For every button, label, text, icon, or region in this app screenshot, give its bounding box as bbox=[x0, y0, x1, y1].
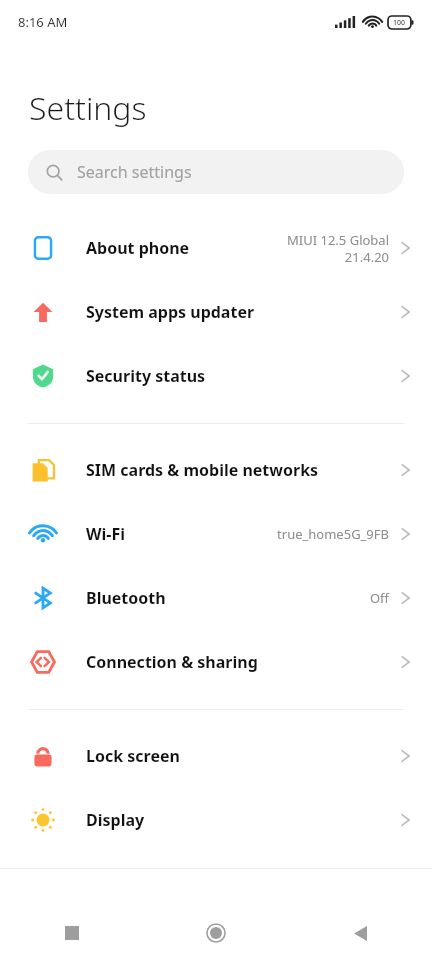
button[interactable]: Recents bbox=[0, 906, 144, 960]
button[interactable]: Home bbox=[144, 906, 288, 960]
button[interactable]: Bluetooth bbox=[0, 566, 432, 630]
staticText: System apps updater bbox=[86, 301, 255, 323]
button[interactable]: System apps updater bbox=[0, 280, 432, 344]
staticText: Off bbox=[369, 589, 389, 607]
button[interactable]: About phone bbox=[0, 216, 432, 280]
staticText: Lock screen bbox=[86, 745, 180, 767]
button[interactable]: Connection & sharing bbox=[0, 630, 432, 694]
staticText: SIM cards & mobile networks bbox=[86, 459, 319, 481]
staticText: Search settings bbox=[77, 161, 192, 183]
button[interactable]: SIM cards & mobile networks bbox=[0, 438, 432, 502]
button[interactable]: Back bbox=[288, 906, 432, 960]
button[interactable]: Display bbox=[0, 788, 432, 852]
button[interactable]: Search settings bbox=[28, 150, 404, 194]
button[interactable]: Lock screen bbox=[0, 724, 432, 788]
staticText: Settings bbox=[29, 86, 147, 130]
staticText: true_home5G_9FB bbox=[277, 525, 389, 543]
button[interactable]: Security status bbox=[0, 344, 432, 408]
staticText: Bluetooth bbox=[86, 587, 166, 609]
staticText: Security status bbox=[86, 365, 206, 387]
staticText: MIUI 12.5 Global 21.4.20 bbox=[287, 231, 389, 266]
button[interactable]: Wi-Fi bbox=[0, 502, 432, 566]
staticText: Display bbox=[86, 809, 145, 831]
staticText: Wi-Fi bbox=[86, 523, 125, 545]
staticText: 8:16 AM bbox=[18, 13, 68, 31]
staticText: Connection & sharing bbox=[86, 651, 258, 673]
staticText: About phone bbox=[86, 237, 190, 259]
staticText: 100 bbox=[393, 18, 406, 28]
